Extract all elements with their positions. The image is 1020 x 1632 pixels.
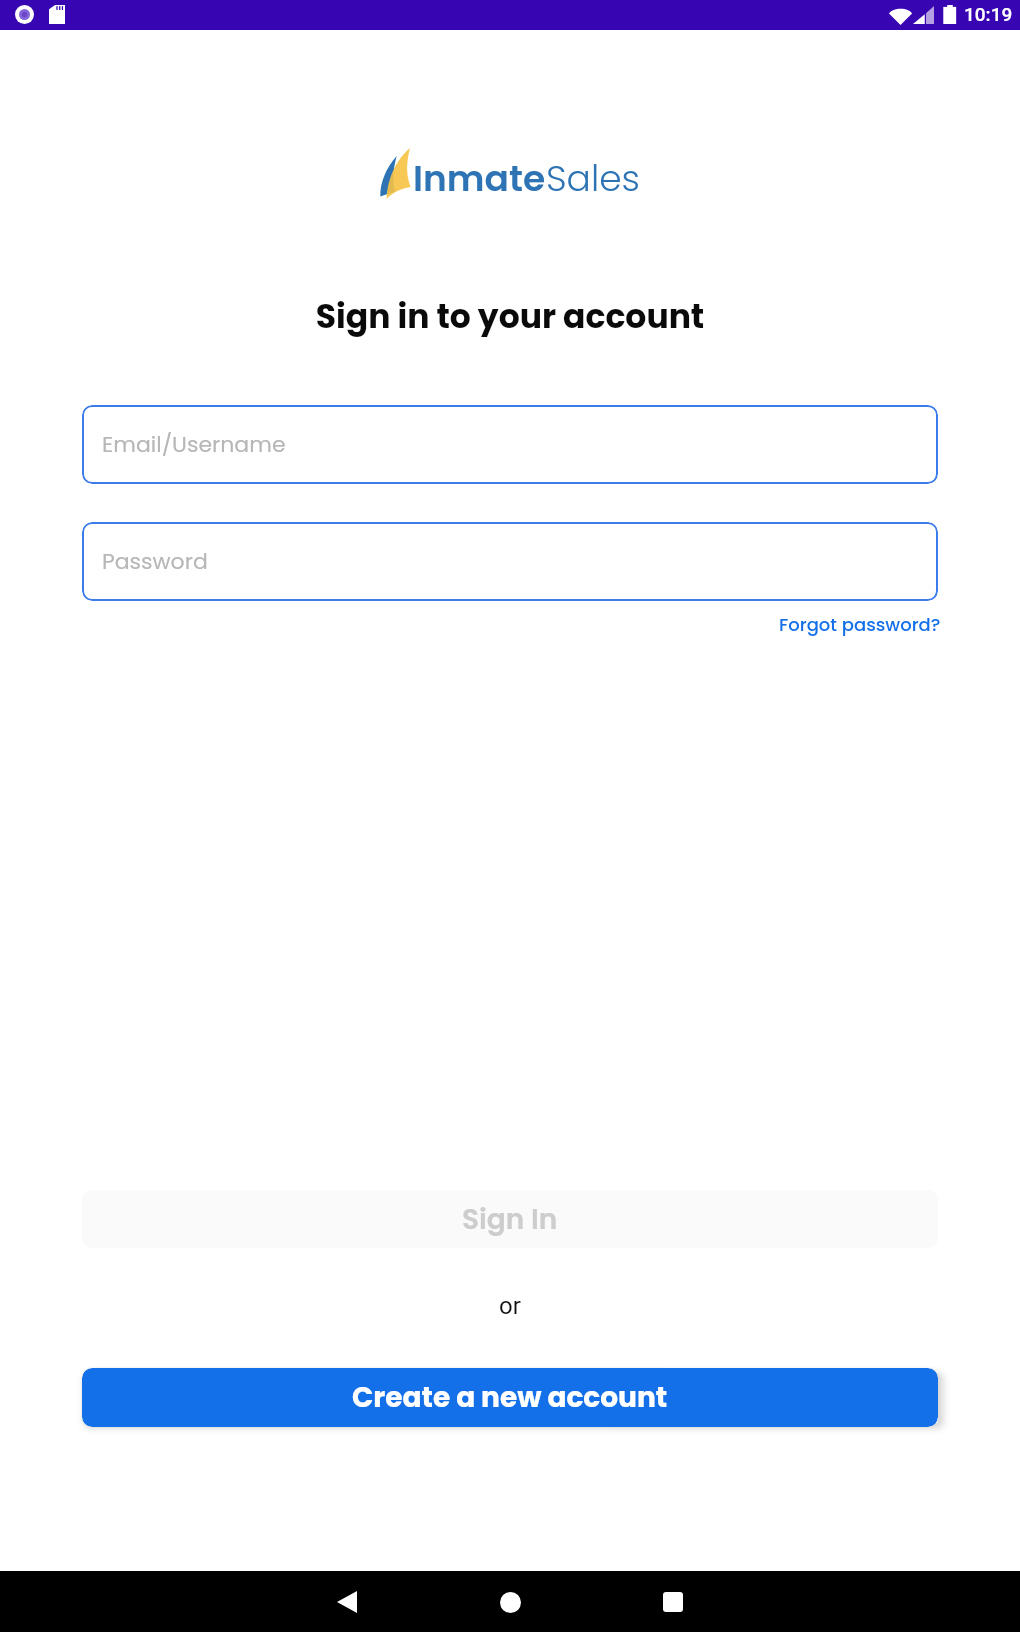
staticText: 10:19 [964, 3, 1013, 25]
staticText: or [0, 1292, 1020, 1320]
button[interactable]: Email/Username [82, 405, 938, 484]
button[interactable]: Home [480, 1572, 540, 1632]
staticText: Sign In [462, 1200, 558, 1239]
staticText: Password [102, 546, 208, 577]
button[interactable]: Back [317, 1572, 377, 1632]
staticText: Forgot password? [779, 612, 941, 637]
staticText: Sales [546, 153, 640, 203]
staticText: Inmate [413, 153, 546, 203]
button[interactable]: Password [82, 522, 938, 601]
button[interactable]: Create a new account [82, 1368, 938, 1427]
button[interactable]: Recent apps [643, 1572, 703, 1632]
button[interactable]: Forgot password? [773, 606, 947, 643]
staticText: Create a new account [352, 1378, 668, 1417]
staticText: Email/Username [102, 429, 286, 460]
staticText: Sign in to your account [0, 293, 1020, 339]
button[interactable]: Sign In [82, 1190, 938, 1248]
